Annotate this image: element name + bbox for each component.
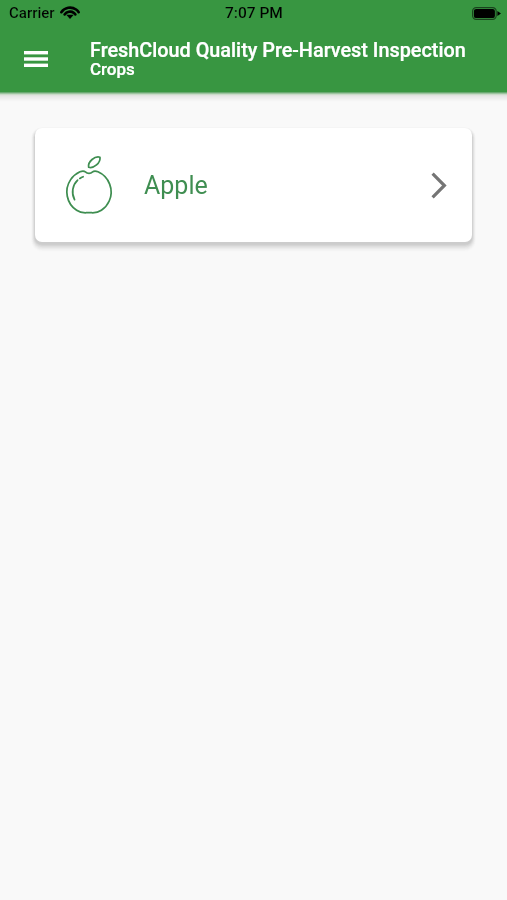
staticText: Crops — [90, 59, 135, 79]
button[interactable]: Apple — [35, 128, 472, 242]
button[interactable]: Open navigation menu — [13, 36, 59, 82]
staticText: Carrier — [9, 4, 55, 22]
staticText: Apple — [144, 171, 208, 200]
staticText: 7:07 PM — [225, 4, 283, 22]
staticText: FreshCloud Quality Pre-Harvest Inspectio… — [90, 39, 466, 62]
other: Wi-Fi — [61, 4, 79, 22]
